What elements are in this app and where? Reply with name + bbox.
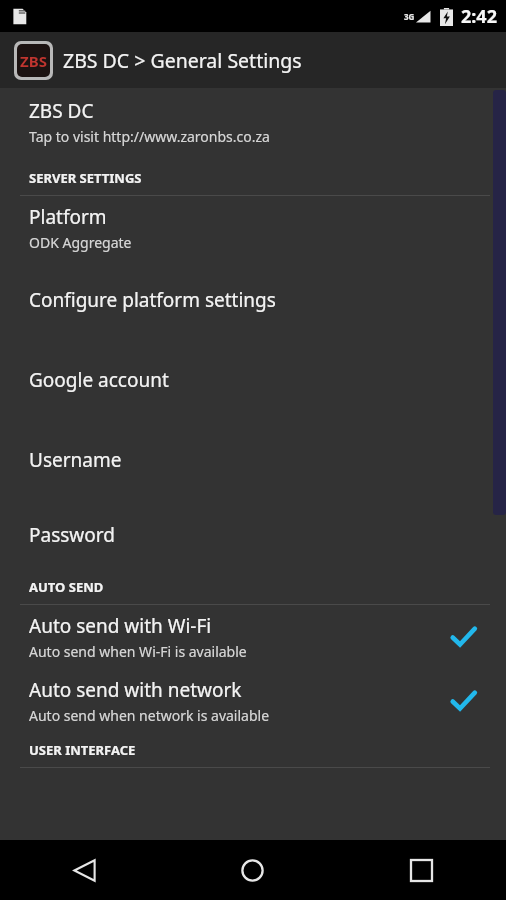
staticText: USER INTERFACE xyxy=(29,741,136,759)
staticText: 3G xyxy=(404,11,415,22)
button[interactable]: Back xyxy=(0,840,168,900)
other: Toggle Auto send with Wi-Fi xyxy=(446,620,480,654)
staticText: SERVER SETTINGS xyxy=(29,169,142,187)
button[interactable]: Platform xyxy=(0,196,506,260)
staticText: Username xyxy=(29,447,122,473)
staticText: ZBS xyxy=(20,51,47,71)
staticText: Configure platform settings xyxy=(29,287,276,313)
button[interactable]: Google account xyxy=(0,340,506,420)
button[interactable]: Username xyxy=(0,420,506,500)
staticText: Google account xyxy=(29,367,169,393)
staticText: Tap to visit http://www.zaronbs.co.za xyxy=(29,127,270,146)
button[interactable]: ZBS xyxy=(0,32,506,88)
staticText: ZBS DC xyxy=(29,98,94,124)
other: Toggle Auto send with network xyxy=(446,684,480,718)
staticText: ZBS DC > General Settings xyxy=(63,47,302,74)
staticText: AUTO SEND xyxy=(29,578,104,596)
staticText: Auto send when Wi-Fi is available xyxy=(29,642,247,661)
staticText: Auto send with network xyxy=(29,677,242,703)
button[interactable]: Recent apps xyxy=(337,840,506,900)
staticText: ODK Aggregate xyxy=(29,233,132,252)
staticText: Auto send with Wi-Fi xyxy=(29,613,212,639)
button[interactable]: Auto send with Wi-Fi xyxy=(0,605,506,669)
button[interactable]: Home xyxy=(168,840,337,900)
button[interactable]: Password xyxy=(0,500,506,570)
button[interactable]: Auto send with network xyxy=(0,669,506,733)
staticText: Auto send when network is available xyxy=(29,706,270,725)
button[interactable]: Configure platform settings xyxy=(0,260,506,340)
staticText: Password xyxy=(29,522,115,548)
staticText: 2:42 xyxy=(461,4,497,29)
staticText: Platform xyxy=(29,204,107,230)
button[interactable]: ZBS DC xyxy=(0,94,506,150)
